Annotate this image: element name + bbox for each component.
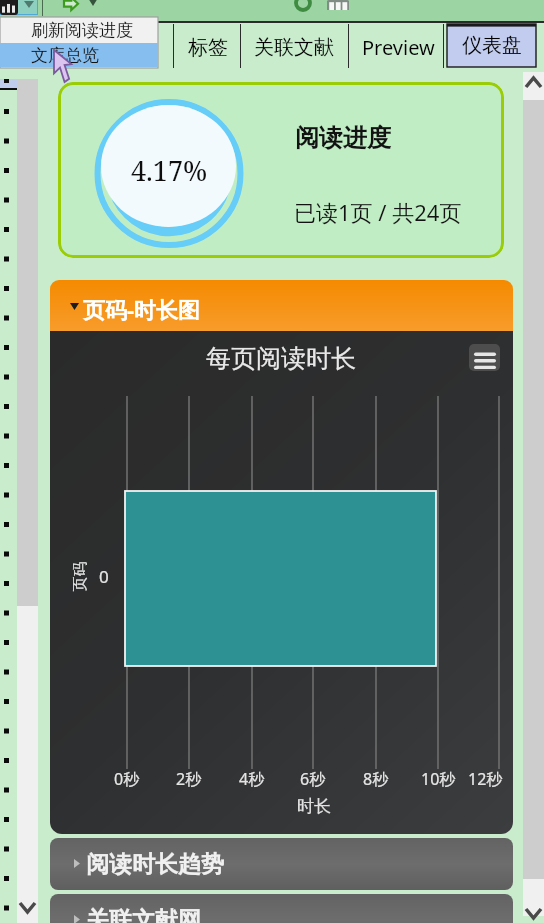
button[interactable]: 页码-时长图 (50, 280, 513, 331)
staticText: 0 (99, 565, 109, 588)
staticText: 6秒 (300, 768, 326, 790)
button[interactable]: Chart menu (469, 344, 500, 371)
staticText: 文库总览 (31, 45, 99, 66)
staticText: 刷新阅读进度 (31, 20, 133, 41)
staticText: 页码 (70, 561, 89, 591)
button[interactable]: 标签 (188, 27, 228, 67)
staticText: 阅读进度 (295, 123, 391, 153)
staticText: 仪表盘 (462, 33, 522, 58)
staticText: 标签 (188, 35, 228, 60)
button[interactable]: 仪表盘 (447, 24, 536, 67)
staticText: 12秒 (468, 768, 503, 790)
button[interactable]: 关联文献 (254, 27, 334, 67)
button[interactable]: 文库总览 (0, 43, 158, 67)
staticText: 关联文献网 (86, 906, 201, 923)
staticText: Preview (362, 34, 435, 61)
button[interactable]: Chart tools (0, 0, 38, 15)
staticText: 10秒 (421, 768, 456, 790)
button[interactable]: 关联文献网 (50, 894, 513, 923)
staticText: 2秒 (176, 768, 202, 790)
button[interactable]: 阅读时长趋势 (50, 838, 513, 890)
button[interactable]: Tab (120, 29, 170, 65)
button[interactable]: 刷新阅读进度 (0, 18, 158, 43)
staticText: 每页阅读时长 (206, 343, 356, 374)
staticText: 4秒 (239, 768, 265, 790)
staticText: 0秒 (114, 768, 140, 790)
staticText: 8秒 (363, 768, 389, 790)
button[interactable]: Preview (362, 27, 435, 67)
staticText: 阅读时长趋势 (86, 850, 224, 879)
button[interactable]: 4.17% (58, 82, 504, 258)
staticText: 4.17% (131, 152, 208, 182)
staticText: 已读1页 / 共24页 (294, 197, 462, 227)
staticText: 时长 (297, 796, 331, 817)
staticText: 页码-时长图 (83, 294, 201, 324)
staticText: 关联文献 (254, 35, 334, 60)
